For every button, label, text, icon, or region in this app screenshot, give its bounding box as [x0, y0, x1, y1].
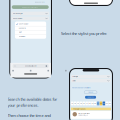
button[interactable]: AA: [13, 64, 49, 68]
button[interactable]: 24: [105, 101, 108, 105]
staticText: 16: [83, 103, 85, 104]
button[interactable]: Advanced search options: [72, 87, 96, 89]
staticText: 20: [94, 103, 96, 104]
staticText: Vendor B: [19, 27, 26, 29]
staticText: Assistant: [19, 36, 25, 37]
button[interactable]: BOOK AN APPOINTMENT: [12, 5, 49, 9]
staticText: Advanced search options: [72, 87, 91, 89]
staticText: Marissa Martinez: [78, 112, 90, 114]
staticText: 17: [86, 103, 88, 104]
staticText: Stylist · 30 min · $45: [78, 114, 88, 116]
staticText: Any Provider: [13, 17, 23, 19]
staticText: 18: [88, 103, 90, 104]
button[interactable]: 22: [100, 101, 102, 105]
staticText: 15: [80, 103, 82, 104]
staticText: booking.site.com: [25, 65, 36, 67]
button[interactable]: Stylist: [71, 79, 111, 82]
staticText: Select the stylist you prefer.: [61, 31, 107, 36]
button[interactable]: 23: [103, 101, 105, 105]
staticText: Friday, July 18, 2025: [72, 108, 85, 110]
staticText: 13: [74, 103, 76, 104]
staticText: Search the available dates for: [7, 96, 57, 102]
button[interactable]: 19: [91, 101, 94, 105]
staticText: 25: [109, 103, 111, 104]
button[interactable]: Select Job: [71, 75, 111, 78]
button[interactable]: Staff: [15, 30, 46, 34]
staticText: Service or Job: [13, 13, 23, 14]
staticText: 12: [71, 103, 73, 104]
button[interactable]: Search: [85, 96, 96, 99]
staticText: Reset: [88, 91, 92, 93]
button[interactable]: 15: [80, 101, 82, 105]
staticText: BOOK AN APPOINTMENT: [22, 6, 38, 8]
button[interactable]: 21: [97, 101, 99, 105]
staticText: Select Job: [72, 76, 78, 77]
button[interactable]: 13: [74, 101, 76, 105]
button[interactable]: Select the stylist you prefer.: [61, 31, 114, 36]
staticText: Book Service: [35, 1, 45, 3]
button[interactable]: 25: [108, 101, 111, 105]
button[interactable]: Vendor B: [15, 26, 46, 30]
button[interactable]: 17: [85, 101, 88, 105]
button[interactable]: Assistant: [15, 34, 46, 38]
button[interactable]: Any Provider: [11, 17, 49, 20]
button[interactable]: Any Provider: [15, 22, 46, 26]
button[interactable]: Reset: [84, 91, 97, 93]
staticText: 23: [103, 103, 105, 104]
button[interactable]: 16: [82, 101, 85, 105]
button[interactable]: Marissa Martinez: [71, 111, 111, 119]
staticText: 14: [77, 103, 79, 104]
button[interactable]: 18: [88, 101, 91, 105]
staticText: Staff: [19, 31, 22, 33]
staticText: Search: [87, 96, 93, 98]
staticText: 19: [91, 103, 93, 104]
staticText: Stylist: [72, 80, 75, 82]
button[interactable]: Service or Job: [11, 12, 49, 15]
button[interactable]: 12: [71, 101, 74, 105]
staticText: your preferences.: [7, 103, 38, 108]
staticText: 21: [97, 103, 99, 104]
staticText: Any Provider: [19, 23, 29, 25]
button[interactable]: 14: [77, 101, 79, 105]
staticText: Then choose the time and: [7, 113, 50, 118]
staticText: 24: [106, 103, 108, 104]
button[interactable]: 20: [94, 101, 97, 105]
